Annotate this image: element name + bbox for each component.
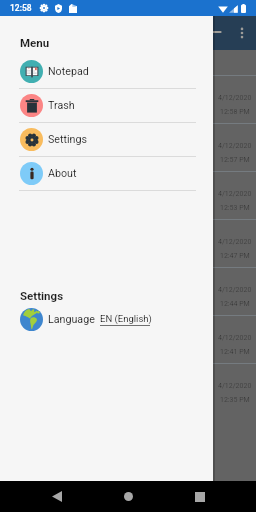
staticText: Menu bbox=[20, 36, 50, 49]
button[interactable]: 4/12/2020 bbox=[0, 316, 256, 363]
staticText: 4/12/2020 bbox=[218, 142, 252, 150]
staticText: Notepad bbox=[48, 65, 89, 78]
staticText: 12:47 PM bbox=[220, 252, 250, 260]
button[interactable]: Notepad bbox=[0, 55, 213, 89]
staticText: 4/12/2020 bbox=[218, 334, 252, 342]
staticText: Trash bbox=[48, 99, 75, 112]
button[interactable]: Home bbox=[110, 481, 146, 512]
staticText: 12:58 PM bbox=[220, 108, 250, 116]
button[interactable]: About bbox=[0, 157, 213, 191]
staticText: 4/12/2020 bbox=[218, 382, 252, 390]
button[interactable]: 4/12/2020 bbox=[0, 76, 256, 123]
staticText: 12:58 bbox=[10, 3, 32, 13]
staticText: 4/12/2020 bbox=[218, 190, 252, 198]
button[interactable]: 4/12/2020 bbox=[0, 220, 256, 267]
button[interactable]: Settings bbox=[0, 123, 213, 157]
button[interactable]: 4/12/2020 bbox=[0, 124, 256, 171]
button[interactable]: Recent apps bbox=[182, 481, 218, 512]
staticText: 12:35 PM bbox=[220, 396, 250, 404]
button[interactable]: Back bbox=[39, 481, 75, 512]
staticText: Language bbox=[48, 313, 95, 326]
button[interactable]: More options bbox=[233, 24, 251, 42]
staticText: 12:44 PM bbox=[220, 300, 250, 308]
staticText: 12:53 PM bbox=[220, 204, 250, 212]
button[interactable]: Close navigation drawer bbox=[203, 22, 223, 42]
button[interactable]: 4/12/2020 bbox=[0, 268, 256, 315]
staticText: 4/12/2020 bbox=[218, 238, 252, 246]
staticText: Settings bbox=[48, 133, 88, 146]
button[interactable]: 4/12/2020 bbox=[0, 364, 256, 411]
button[interactable]: Language bbox=[0, 308, 213, 331]
staticText: EN (English) bbox=[100, 313, 152, 324]
staticText: 4/12/2020 bbox=[218, 94, 252, 102]
staticText: Settings bbox=[20, 289, 64, 302]
button[interactable]: 4/12/2020 bbox=[0, 172, 256, 219]
staticText: 12:41 PM bbox=[220, 348, 250, 356]
staticText: About bbox=[48, 167, 77, 180]
staticText: 12:57 PM bbox=[220, 156, 250, 164]
staticText: 4/12/2020 bbox=[218, 286, 252, 294]
button[interactable]: Trash bbox=[0, 89, 213, 123]
